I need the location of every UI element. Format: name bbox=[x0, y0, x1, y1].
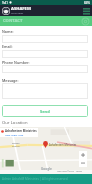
staticText: Send bbox=[40, 109, 50, 114]
staticText: Google bbox=[41, 167, 52, 171]
staticText: Name: bbox=[2, 29, 14, 34]
button[interactable] bbox=[2, 65, 88, 73]
staticText: CONTACT bbox=[3, 18, 23, 24]
button[interactable] bbox=[2, 50, 88, 58]
staticText: Ashafentem Ministries bbox=[5, 129, 37, 133]
button[interactable]: Zoom out bbox=[79, 159, 87, 167]
staticText: Admin AshafeM Ministries | All rights re… bbox=[2, 177, 68, 181]
staticText: Phone Number: bbox=[2, 60, 30, 65]
button[interactable] bbox=[2, 35, 88, 43]
staticText: Map data ©2024 Terms bbox=[57, 170, 83, 173]
staticText: Kidane Church bbox=[12, 142, 20, 148]
staticText: ASHAFEM bbox=[11, 6, 31, 12]
staticText: Email: bbox=[2, 44, 13, 49]
staticText: Ashafentem Ministries bbox=[49, 143, 77, 147]
button[interactable]: Send bbox=[2, 105, 88, 117]
staticText: 84% bbox=[84, 1, 90, 5]
staticText: View larger map bbox=[5, 133, 24, 136]
staticText: Message: bbox=[2, 78, 19, 83]
button[interactable] bbox=[2, 83, 88, 99]
staticText: Our Location bbox=[2, 120, 28, 126]
staticText: 9:41 bbox=[2, 1, 8, 5]
button[interactable]: Zoom in bbox=[79, 151, 87, 159]
button[interactable]: Menu bbox=[82, 7, 90, 15]
staticText: MINISTRIES bbox=[11, 12, 24, 15]
